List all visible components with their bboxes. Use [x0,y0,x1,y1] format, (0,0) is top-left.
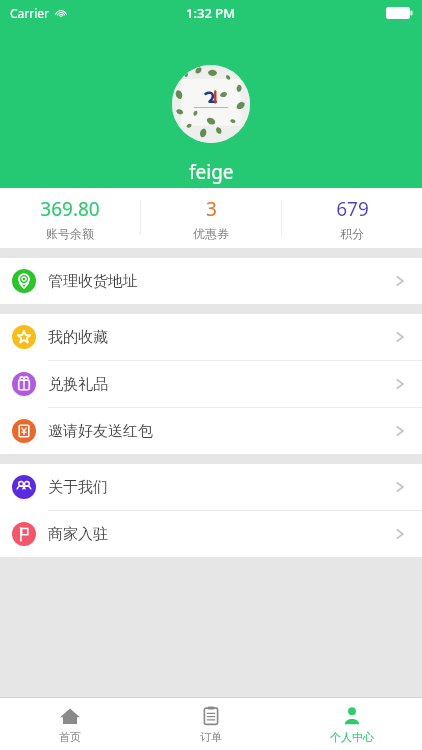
staticText: 3 [206,196,217,222]
staticText: 1:32 PM [186,4,236,22]
staticText: 商家入驻 [48,525,108,544]
button[interactable]: 商家入驻 [0,511,422,557]
button[interactable]: 管理收货地址 [0,258,422,304]
staticText: 首页 [59,730,81,744]
staticText: 优惠券 [193,226,229,241]
staticText: 积分 [340,226,364,241]
button[interactable]: 首页 [0,698,140,750]
staticText: feige [189,159,234,185]
staticText: 369.80 [40,196,100,222]
staticText: 账号余额 [46,226,94,241]
staticText: 邀请好友送红包 [48,422,153,441]
staticText: 679 [336,196,369,222]
button[interactable]: 兑换礼品 [0,361,422,408]
button[interactable]: 订单 [140,698,281,750]
staticText: 我的收藏 [48,328,108,347]
button[interactable]: 个人中心 [281,698,422,750]
staticText: 兑换礼品 [48,375,108,394]
staticText: 关于我们 [48,478,108,497]
staticText: 个人中心 [330,730,374,744]
staticText: 订单 [200,730,222,744]
button[interactable]: 369.80 [0,188,140,248]
button[interactable]: 679 [282,188,422,248]
staticText: Carrier [10,5,50,21]
button[interactable]: 3 [141,188,281,248]
staticText: 管理收货地址 [48,272,138,291]
button[interactable]: 我的收藏 [0,314,422,361]
button[interactable]: 关于我们 [0,464,422,511]
button[interactable]: 邀请好友送红包 [0,408,422,454]
